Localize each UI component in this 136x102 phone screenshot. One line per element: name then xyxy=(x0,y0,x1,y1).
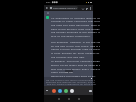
staticText: the parties involved in the matter, and xyxy=(51,30,100,33)
staticText: We use cookies and similar technologies … xyxy=(46,79,95,82)
staticText: also to the wider community. xyxy=(51,34,91,37)
button[interactable]: chat.openai.com/c/f1 xyxy=(49,6,78,10)
button[interactable]: Hide keyboard xyxy=(89,90,92,92)
staticText: needs a much broader view so that it xyxy=(51,47,100,50)
button[interactable]: Dismiss xyxy=(90,77,92,79)
staticText: The example, however, is not the same xyxy=(51,40,100,43)
button[interactable]: Shortcut xyxy=(70,89,74,93)
button[interactable]: Downloads xyxy=(81,7,84,10)
button[interactable]: Shortcut xyxy=(64,89,68,93)
staticText: is clear enough for most readers of xyxy=(51,51,100,54)
button[interactable]: Back xyxy=(45,6,49,10)
button[interactable]: Tabs xyxy=(85,7,88,10)
staticText: paid to the distinct roles and duties of xyxy=(51,27,100,30)
staticText: way that is not wholly exact, since the xyxy=(51,67,100,70)
button[interactable]: Recent apps xyxy=(74,95,84,102)
staticText: An analogous or cognate legal or societa… xyxy=(51,16,100,19)
staticText: the idea you have described, with care xyxy=(51,23,100,26)
staticText: chat.openai.com/c/f1 xyxy=(53,7,77,10)
staticText: See our Cookie Preferences for more info… xyxy=(47,83,96,86)
staticText: as the one in the first place, and it al… xyxy=(51,44,100,47)
button[interactable]: Open menu xyxy=(46,11,49,14)
button[interactable]: Shortcut xyxy=(52,89,56,93)
button[interactable]: More options xyxy=(89,7,92,10)
staticText: In general, one must consider whether xyxy=(51,59,100,62)
staticText: do not xyxy=(65,70,73,73)
staticText: the present day and age. xyxy=(51,55,85,58)
staticText: either of the terms may be used in a xyxy=(51,63,100,66)
staticText: 9:41 ●●● xyxy=(46,1,58,4)
staticText: agree with the newer ones at all. xyxy=(51,74,96,77)
button[interactable]: Home xyxy=(64,95,74,102)
staticText: concept in other countries that mirrors xyxy=(51,19,100,22)
button[interactable]: Collapse xyxy=(45,89,48,92)
button[interactable]: Back xyxy=(54,95,64,102)
staticText: maintain and improve our services, and f… xyxy=(46,81,95,84)
button[interactable]: Shortcut xyxy=(58,89,62,93)
staticText: older sources xyxy=(51,70,70,73)
